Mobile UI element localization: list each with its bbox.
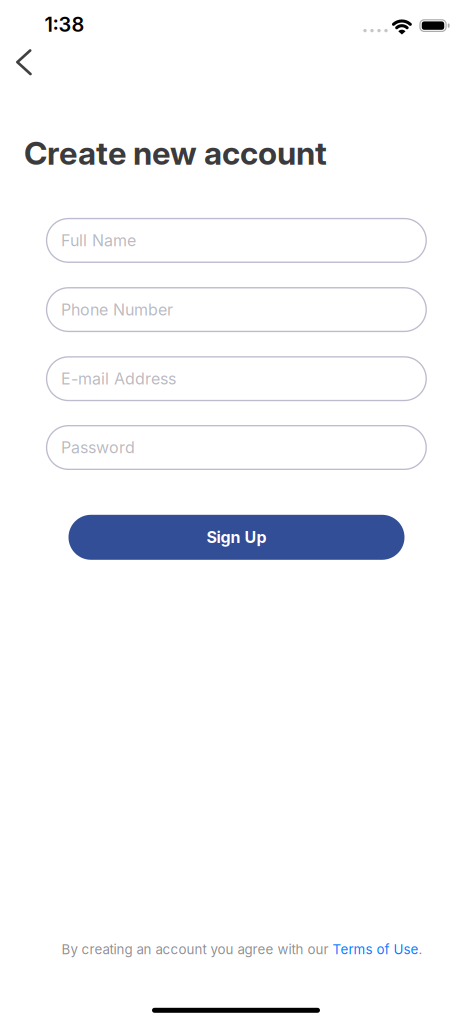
- staticText: Terms of Use: [332, 942, 418, 957]
- staticText: .: [418, 942, 422, 957]
- staticText: Sign Up: [206, 528, 266, 547]
- staticText: By creating an account you agree with ou…: [61, 942, 332, 957]
- staticText: Phone Number: [61, 300, 173, 319]
- staticText: Password: [61, 438, 135, 457]
- staticText: Full Name: [61, 231, 136, 250]
- staticText: 1:38: [44, 13, 84, 36]
- staticText: Create new account: [24, 134, 327, 172]
- staticText: E-mail Address: [61, 369, 176, 388]
